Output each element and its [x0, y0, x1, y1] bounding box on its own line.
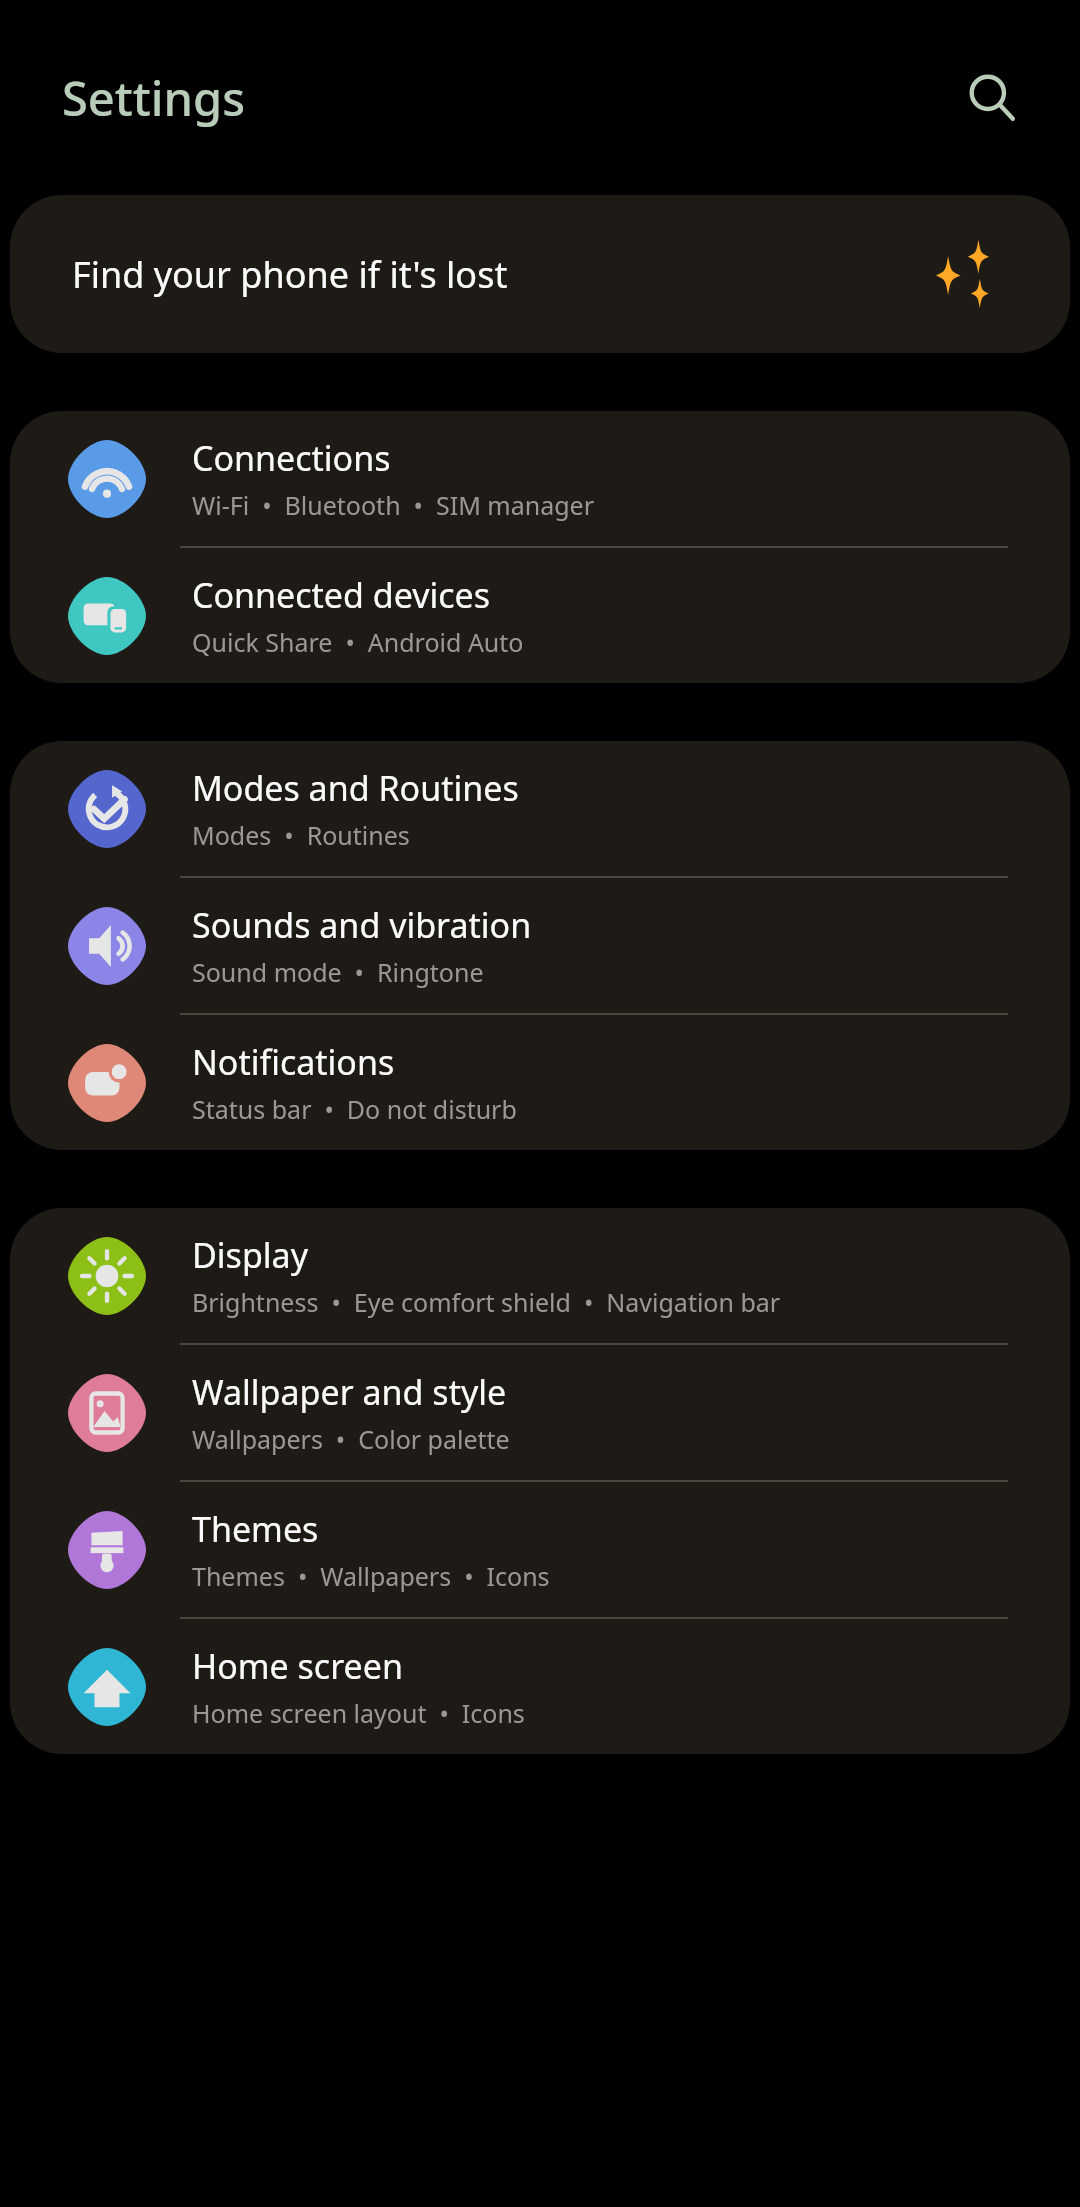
- button[interactable]: Themes: [10, 1482, 1070, 1619]
- staticText: Status bar • Do not disturb: [192, 1092, 517, 1126]
- staticText: Settings: [62, 66, 245, 130]
- staticText: Themes: [192, 1506, 319, 1552]
- staticText: Home screen: [192, 1643, 403, 1689]
- staticText: Display: [192, 1232, 308, 1278]
- button[interactable]: Find your phone if it's lost: [10, 195, 1070, 353]
- staticText: Themes • Wallpapers • Icons: [192, 1559, 550, 1593]
- staticText: Modes • Routines: [192, 818, 410, 852]
- staticText: Modes and Routines: [192, 765, 519, 811]
- staticText: Sound mode • Ringtone: [192, 955, 484, 989]
- staticText: Quick Share • Android Auto: [192, 625, 524, 659]
- staticText: Connections: [192, 435, 391, 481]
- button[interactable]: Display: [10, 1208, 1070, 1345]
- staticText: Notifications: [192, 1039, 395, 1085]
- button[interactable]: Connections: [10, 411, 1070, 548]
- staticText: Find your phone if it's lost: [72, 250, 508, 299]
- staticText: Connected devices: [192, 572, 491, 618]
- staticText: Brightness • Eye comfort shield • Naviga…: [192, 1285, 781, 1319]
- staticText: Home screen layout • Icons: [192, 1696, 525, 1730]
- button[interactable]: Wallpaper and style: [10, 1345, 1070, 1482]
- button[interactable]: Search: [944, 50, 1040, 146]
- staticText: Wallpaper and style: [192, 1369, 507, 1415]
- staticText: Sounds and vibration: [192, 902, 532, 948]
- button[interactable]: Connected devices: [10, 548, 1070, 683]
- button[interactable]: Notifications: [10, 1015, 1070, 1150]
- button[interactable]: Sounds and vibration: [10, 878, 1070, 1015]
- staticText: Wallpapers • Color palette: [192, 1422, 510, 1456]
- button[interactable]: Home screen: [10, 1619, 1070, 1754]
- button[interactable]: Modes and Routines: [10, 741, 1070, 878]
- staticText: Wi-Fi • Bluetooth • SIM manager: [192, 488, 595, 522]
